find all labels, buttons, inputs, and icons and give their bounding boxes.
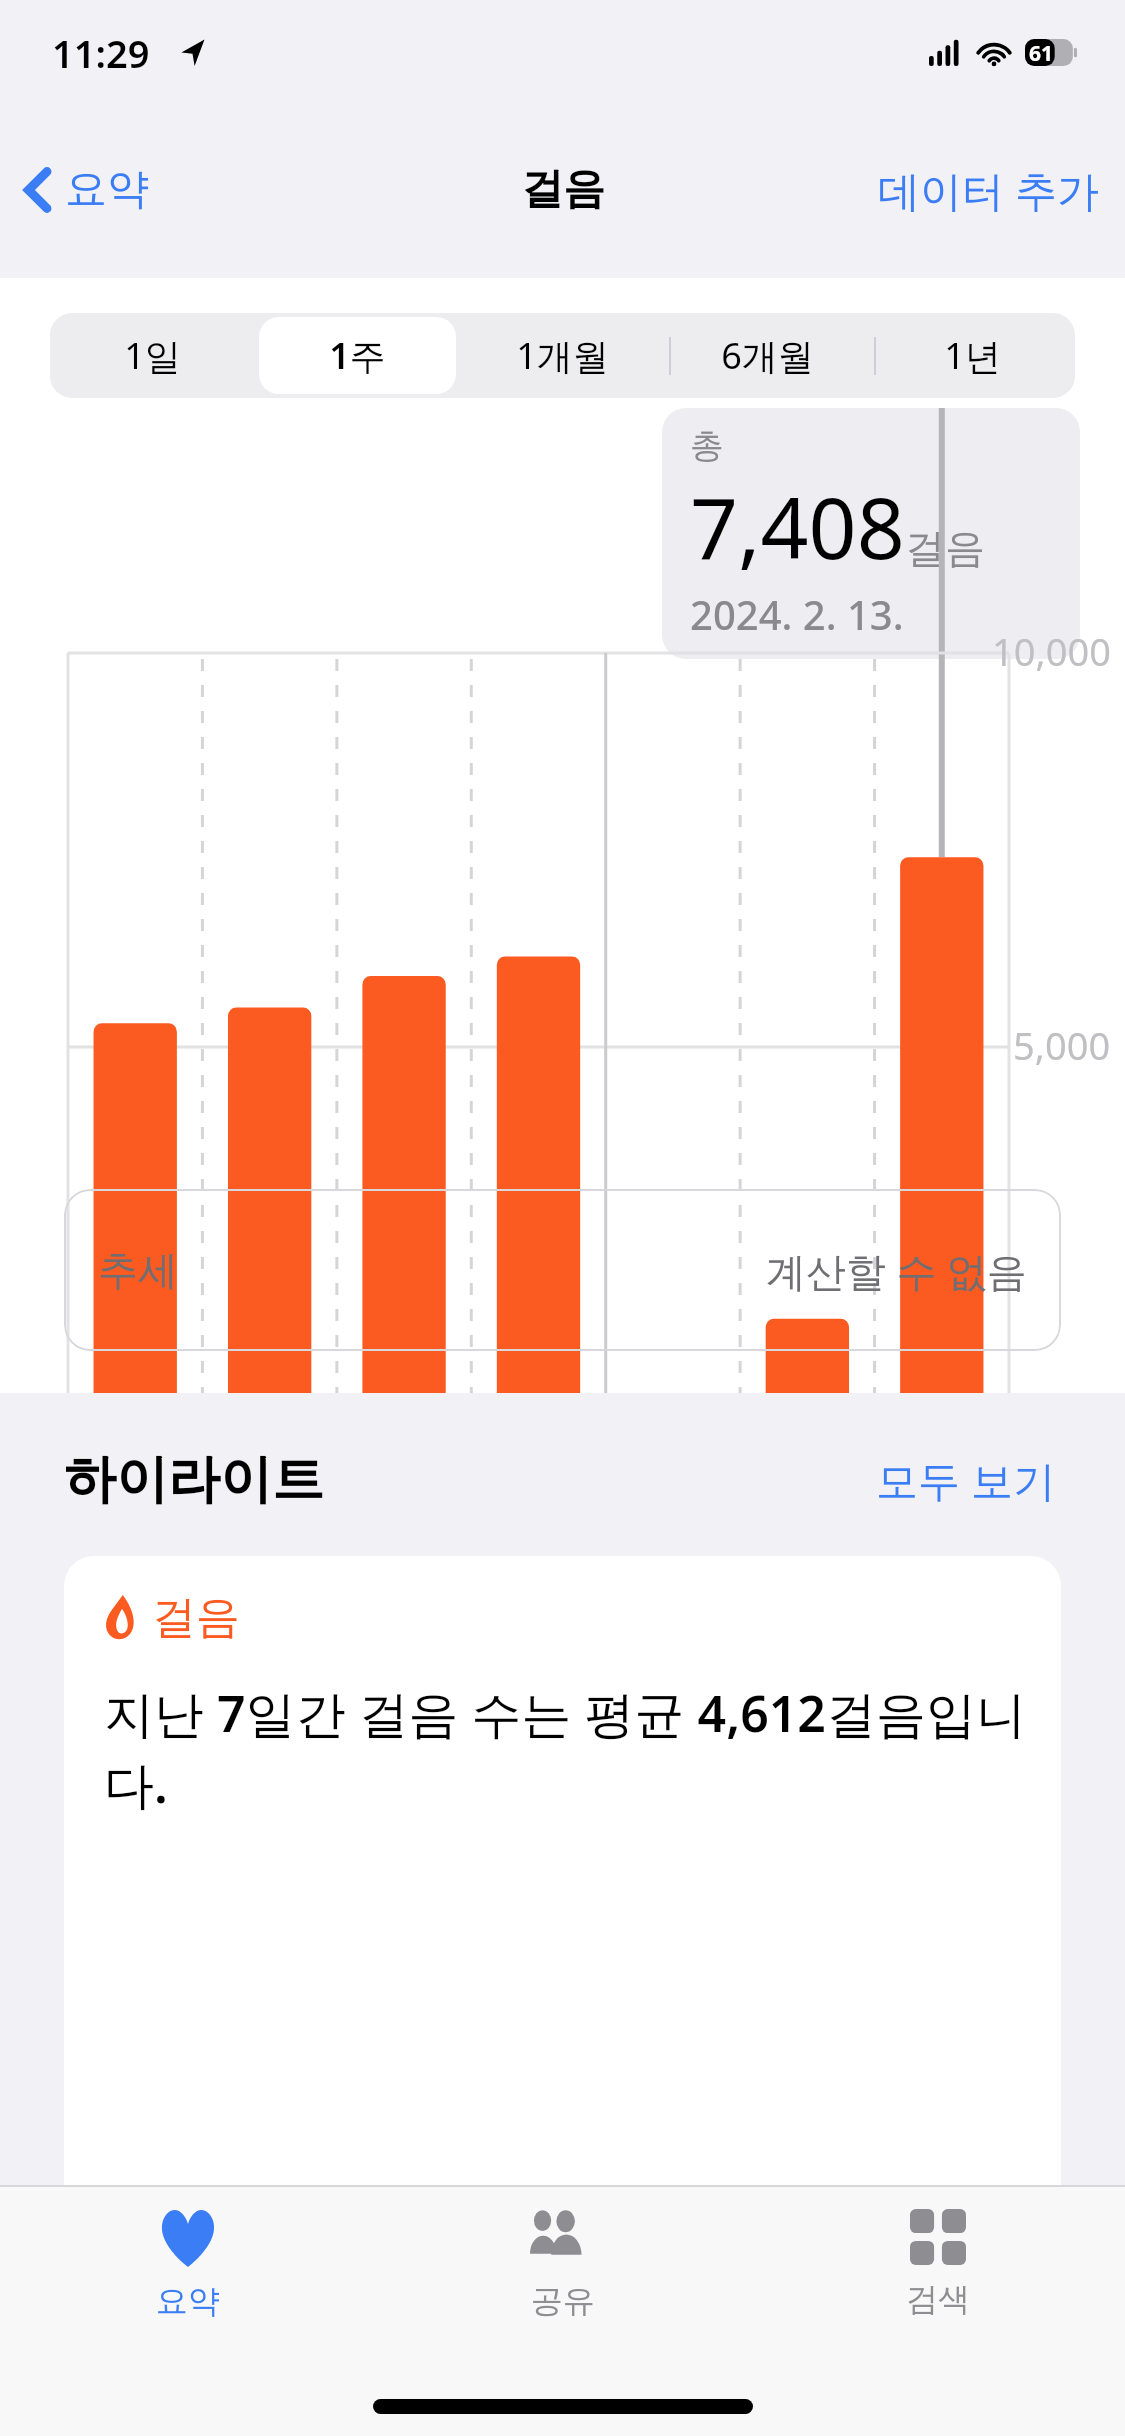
button[interactable]: 1주 — [259, 317, 456, 394]
button[interactable]: 1개월 — [464, 317, 661, 394]
button[interactable]: 1년 — [874, 317, 1071, 394]
staticText: 1개월 — [516, 331, 609, 380]
staticText: 걸음 — [521, 163, 605, 216]
staticText: 걸음 — [152, 1590, 240, 1645]
staticText: 요약 — [65, 163, 149, 216]
staticText: 1년 — [944, 331, 1001, 380]
button[interactable]: 모두 보기 — [870, 1445, 1061, 1514]
staticText: 2024. 2. 13. — [690, 587, 904, 641]
staticText: 계산할 수 없음 — [766, 1243, 1027, 1298]
staticText: 1주 — [329, 331, 386, 380]
button[interactable]: 공유 — [375, 2187, 750, 2357]
staticText: 11:29 — [52, 27, 150, 79]
staticText: 지난 7일간 걸음 수는 평균 4,612걸음입니다. — [104, 1679, 1029, 1818]
staticText: 걸음 — [905, 523, 985, 573]
staticText: 61 — [1029, 39, 1054, 66]
staticText: 공유 — [531, 2281, 595, 2321]
staticText: 검색 — [906, 2279, 970, 2319]
staticText: 요약 — [156, 2281, 220, 2321]
button[interactable]: 1일 — [54, 317, 251, 394]
button[interactable]: 검색 — [750, 2187, 1125, 2357]
staticText: 총 — [690, 424, 724, 467]
staticText: 하이라이트 — [64, 1447, 324, 1513]
staticText: 10,000 — [992, 625, 1111, 677]
button[interactable]: 요약 — [0, 153, 165, 226]
button[interactable]: 6개월 — [669, 317, 866, 394]
button[interactable]: 요약 — [0, 2187, 375, 2357]
staticText: 1일 — [124, 331, 181, 380]
staticText: 추세 — [98, 1245, 178, 1295]
staticText: 6개월 — [721, 331, 814, 380]
button[interactable]: 데이터 추가 — [852, 151, 1125, 228]
staticText: 7,408 — [690, 469, 905, 583]
staticText: 5,000 — [1013, 1019, 1111, 1071]
button[interactable]: 걸음 — [64, 1556, 1061, 2185]
button[interactable]: 추세 — [64, 1189, 1061, 1351]
